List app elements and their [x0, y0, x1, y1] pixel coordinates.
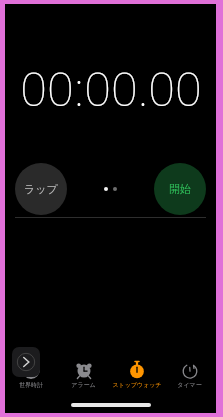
button[interactable]: 世界時計	[5, 357, 57, 399]
staticText: タイマー	[177, 381, 202, 389]
staticText: 開始	[169, 182, 191, 196]
staticText: ラップ	[24, 182, 58, 196]
button[interactable]: アラーム	[57, 357, 110, 399]
button[interactable]: 開始	[154, 163, 206, 215]
staticText: ストップウォッチ	[112, 381, 162, 389]
staticText: 00:00.00	[20, 56, 202, 120]
staticText: 世界時計	[19, 381, 43, 389]
button[interactable]: ラップ	[15, 163, 67, 215]
button[interactable]: ストップウォッチ	[110, 357, 163, 399]
button[interactable]: Back	[12, 347, 40, 377]
staticText: アラーム	[71, 381, 96, 389]
button[interactable]: タイマー	[163, 357, 216, 399]
